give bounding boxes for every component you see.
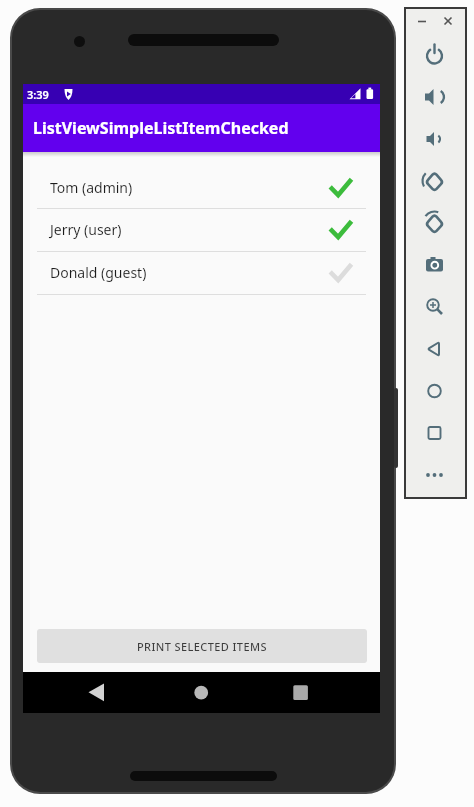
button[interactable]: [406, 328, 465, 370]
button[interactable]: Jerry (user): [37, 208, 366, 251]
button[interactable]: [414, 13, 430, 29]
button[interactable]: Tom (admin): [37, 166, 366, 209]
button[interactable]: [440, 13, 456, 29]
button[interactable]: [406, 202, 465, 244]
button[interactable]: [406, 286, 465, 328]
button[interactable]: [187, 677, 217, 707]
button[interactable]: [406, 76, 465, 118]
staticText: Donald (guest): [50, 263, 147, 282]
button[interactable]: PRINT SELECTED ITEMS: [37, 629, 367, 663]
button[interactable]: [406, 412, 465, 454]
button[interactable]: [406, 244, 465, 286]
button[interactable]: Donald (guest): [37, 251, 366, 294]
staticText: Jerry (user): [50, 220, 122, 239]
staticText: Tom (admin): [50, 178, 133, 197]
button[interactable]: [286, 677, 316, 707]
staticText: PRINT SELECTED ITEMS: [137, 639, 267, 654]
button[interactable]: [406, 118, 465, 160]
button[interactable]: [81, 677, 111, 707]
staticText: ListViewSimpleListItemChecked: [33, 117, 289, 139]
button[interactable]: [406, 454, 465, 496]
button[interactable]: [406, 160, 465, 202]
button[interactable]: [406, 34, 465, 76]
staticText: 3:39: [27, 87, 49, 102]
button[interactable]: [406, 370, 465, 412]
